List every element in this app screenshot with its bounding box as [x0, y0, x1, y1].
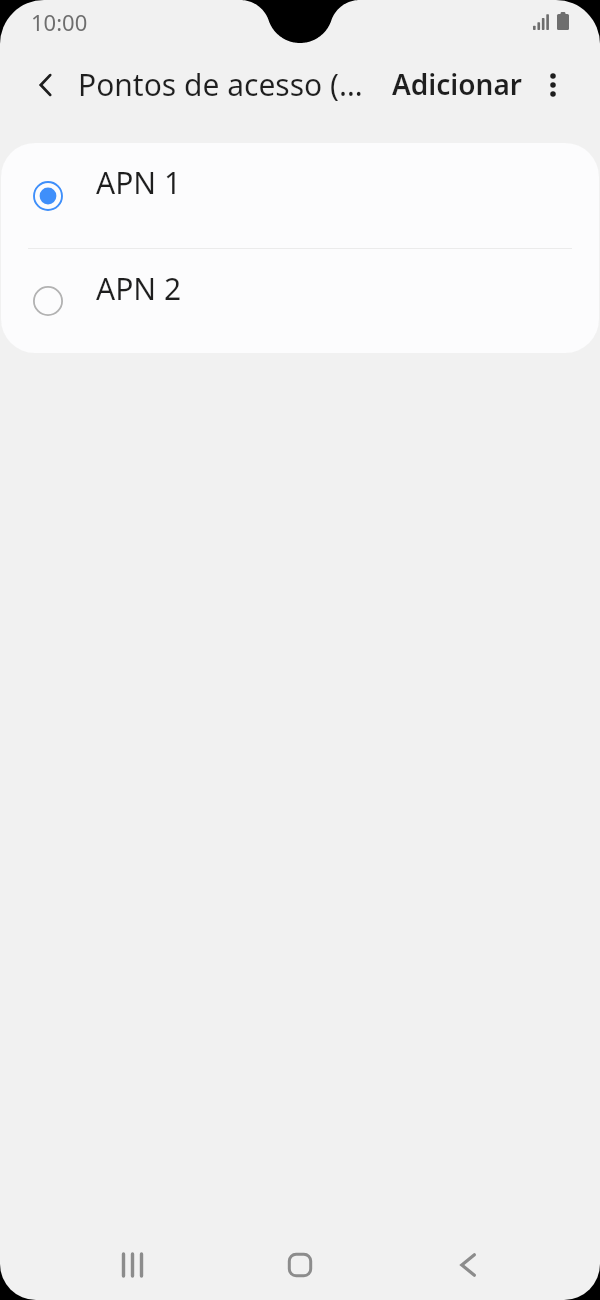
button[interactable]: APN 1 — [1, 143, 599, 248]
button[interactable]: Back — [24, 63, 68, 107]
button[interactable]: Home — [216, 1230, 384, 1300]
button[interactable]: More options — [531, 63, 575, 107]
staticText: Pontos de acesso (… — [78, 64, 363, 105]
staticText: 10:00 — [31, 7, 88, 37]
staticText: APN 1 — [96, 162, 182, 203]
button[interactable]: APN 2 — [1, 249, 599, 353]
button[interactable]: Adicionar — [385, 59, 529, 109]
button[interactable]: Recent apps — [49, 1230, 216, 1300]
button[interactable]: Back — [384, 1230, 552, 1300]
staticText: Adicionar — [392, 65, 522, 103]
staticText: APN 2 — [96, 268, 182, 309]
